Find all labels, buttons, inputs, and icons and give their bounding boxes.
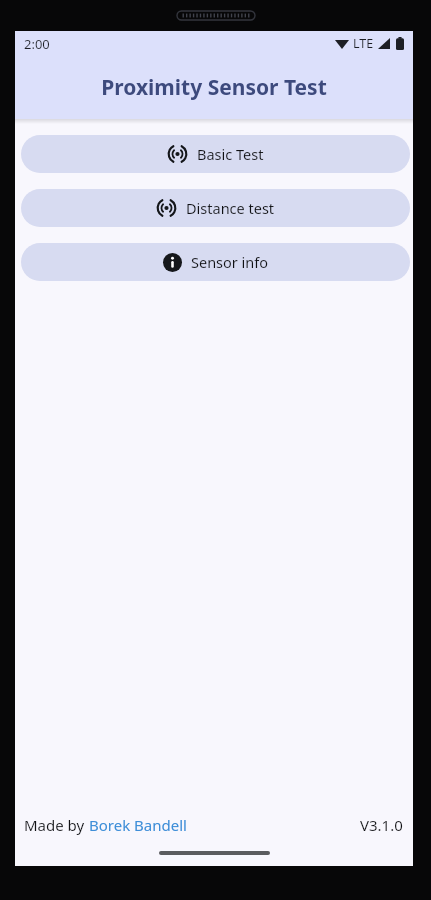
staticText: Basic Test	[197, 144, 264, 164]
other: Proximity sensor	[156, 200, 177, 216]
staticText: Distance test	[186, 198, 275, 218]
staticText: Proximity Sensor Test	[101, 73, 327, 102]
staticText: Made by	[24, 815, 89, 835]
staticText: V3.1.0	[360, 815, 403, 835]
button[interactable]: Borek Bandell	[89, 815, 187, 835]
other: Proximity sensor	[167, 146, 188, 162]
button[interactable]: Proximity sensor	[21, 189, 410, 227]
staticText: Borek Bandell	[89, 815, 187, 835]
button[interactable]: Proximity sensor	[21, 135, 410, 173]
other: Info	[163, 253, 182, 272]
staticText: Sensor info	[191, 252, 269, 272]
staticText: 2:00	[24, 35, 50, 53]
staticText: LTE	[353, 35, 374, 52]
button[interactable]: Info	[21, 243, 410, 281]
